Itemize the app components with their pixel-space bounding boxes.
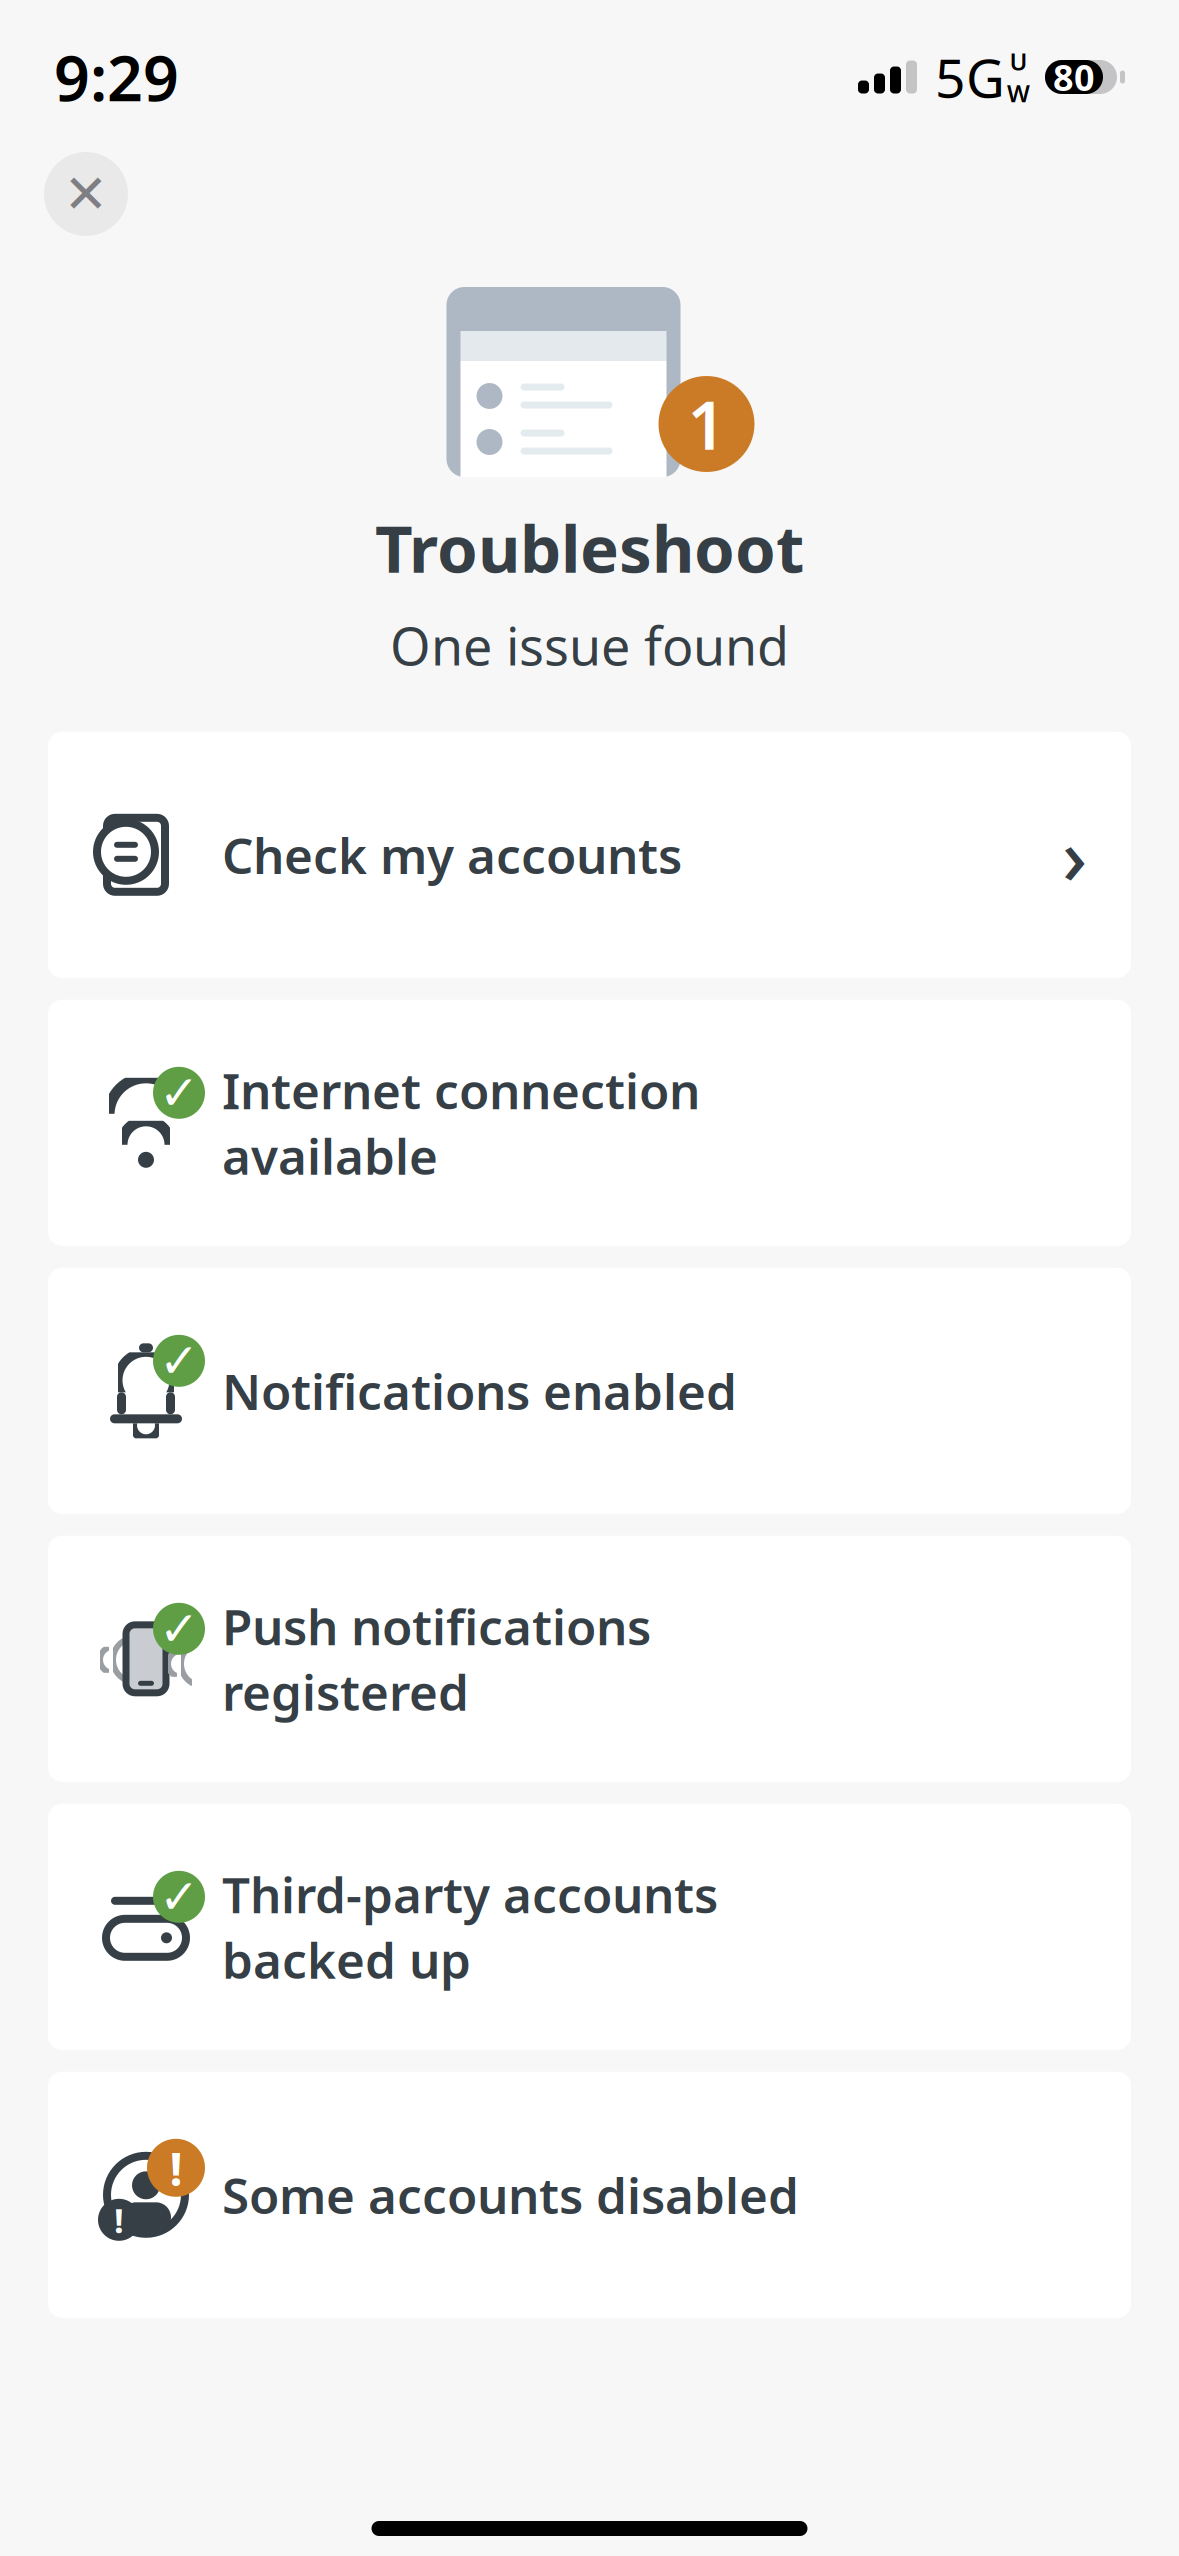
- button[interactable]: ✓: [48, 1804, 1131, 2050]
- button[interactable]: !: [48, 2072, 1131, 2318]
- staticText: Check my accounts: [222, 822, 682, 888]
- button[interactable]: Close: [44, 152, 128, 236]
- staticText: Third-party accounts backed up: [222, 1861, 718, 1992]
- staticText: Internet connection available: [222, 1057, 700, 1188]
- staticText: ✕: [63, 164, 108, 224]
- staticText: ›: [1062, 803, 1087, 906]
- staticText: 80: [1053, 53, 1095, 101]
- staticText: U: [1009, 45, 1027, 77]
- button[interactable]: Check my accounts: [48, 732, 1131, 978]
- button[interactable]: ✓: [48, 1268, 1131, 1514]
- staticText: !: [114, 2197, 124, 2243]
- staticText: ✓: [159, 1602, 199, 1656]
- staticText: 1: [687, 380, 725, 468]
- staticText: !: [169, 2137, 182, 2199]
- button[interactable]: ✓: [48, 1000, 1131, 1246]
- staticText: Some accounts disabled: [222, 2162, 799, 2228]
- staticText: Troubleshoot: [375, 504, 804, 591]
- staticText: One issue found: [390, 611, 789, 680]
- staticText: Notifications enabled: [222, 1358, 737, 1424]
- staticText: ✓: [159, 1066, 199, 1120]
- staticText: ✓: [159, 1334, 199, 1388]
- staticText: ✓: [159, 1870, 199, 1924]
- staticText: 9:29: [54, 35, 179, 119]
- button[interactable]: ✓: [48, 1536, 1131, 1782]
- staticText: W: [1007, 77, 1030, 109]
- staticText: 5G: [935, 42, 1005, 112]
- staticText: Push notifications registered: [222, 1593, 651, 1724]
